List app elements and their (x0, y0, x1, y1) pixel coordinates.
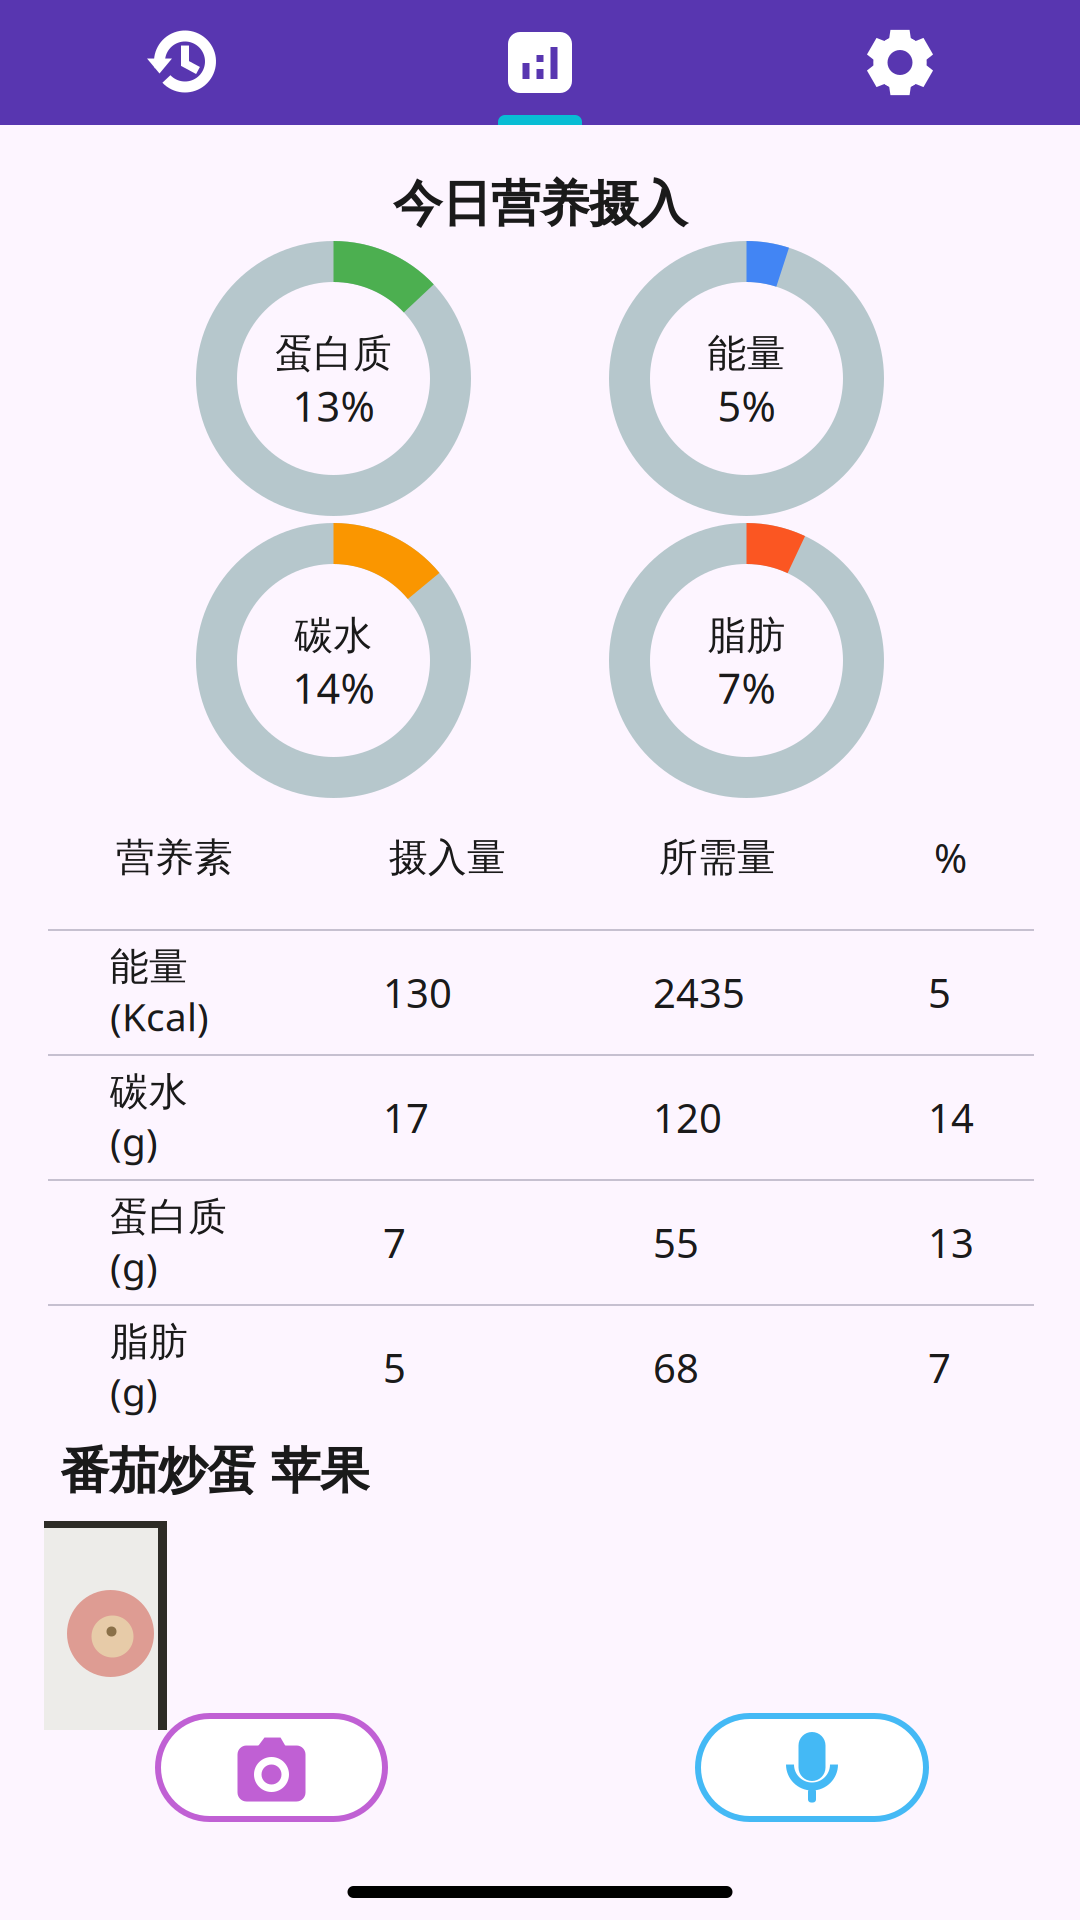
staticText: 碳水 (110, 1068, 188, 1116)
staticText: 蛋白质 (275, 330, 392, 377)
button[interactable]: Statistics (360, 0, 720, 125)
staticText: 7 (928, 1341, 951, 1394)
staticText: % (934, 831, 967, 884)
staticText: 今日营养摄入 (393, 174, 687, 234)
staticText: 7 (383, 1216, 406, 1269)
staticText: 14% (292, 660, 374, 715)
staticText: 17 (383, 1091, 429, 1144)
staticText: 5 (383, 1341, 406, 1394)
staticText: 13 (928, 1216, 974, 1269)
button[interactable]: History (0, 0, 360, 125)
staticText: 脂肪 (110, 1318, 188, 1366)
staticText: 5% (717, 378, 775, 433)
staticText: 能量 (110, 943, 188, 991)
staticText: (g) (110, 1241, 158, 1292)
staticText: 5 (928, 966, 951, 1019)
staticText: 摄入量 (389, 834, 506, 881)
staticText: 碳水 (294, 612, 372, 659)
staticText: 能量 (707, 330, 785, 377)
staticText: 脂肪 (707, 612, 785, 659)
staticText: 130 (383, 966, 452, 1019)
button[interactable]: Settings (720, 0, 1080, 125)
staticText: 蛋白质 (110, 1193, 227, 1241)
staticText: 所需量 (659, 834, 776, 881)
staticText: (g) (110, 1366, 158, 1417)
staticText: 68 (653, 1341, 699, 1394)
staticText: 营养素 (116, 834, 233, 881)
staticText: 14 (928, 1091, 974, 1144)
staticText: 2435 (653, 966, 745, 1019)
staticText: 13% (292, 378, 374, 433)
button[interactable]: Take photo (158, 1716, 385, 1819)
staticText: 7% (717, 660, 775, 715)
staticText: 55 (653, 1216, 699, 1269)
staticText: 120 (653, 1091, 722, 1144)
staticText: 番茄炒蛋 苹果 (60, 1441, 369, 1501)
staticText: (g) (110, 1116, 158, 1167)
button[interactable]: Voice input (698, 1716, 926, 1819)
staticText: (Kcal) (110, 991, 209, 1042)
